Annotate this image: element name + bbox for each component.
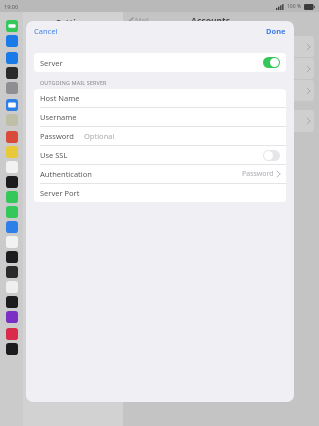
- button[interactable]: App 13: [6, 221, 18, 233]
- staticText: Cancel: [34, 26, 58, 36]
- button[interactable]: App 19: [6, 311, 18, 323]
- staticText: Server Port: [40, 188, 80, 198]
- staticText: Done: [266, 26, 286, 36]
- staticText: Mail: [135, 16, 149, 26]
- button[interactable]: App 14: [6, 236, 18, 248]
- staticText: Username: [40, 112, 77, 122]
- button[interactable]: App 1: [6, 35, 18, 47]
- button[interactable]: App 9: [6, 161, 18, 173]
- button[interactable]: App 6: [6, 114, 18, 126]
- button[interactable]: Toggle on: [263, 57, 280, 68]
- button[interactable]: App 8: [6, 146, 18, 158]
- button[interactable]: App 0: [6, 20, 18, 32]
- button[interactable]: App 16: [6, 266, 18, 278]
- button[interactable]: Password: [34, 127, 286, 145]
- staticText: Password: [40, 131, 74, 141]
- button[interactable]: App 2: [6, 52, 18, 64]
- button[interactable]: App 15: [6, 251, 18, 263]
- staticText: 100 %: [287, 3, 302, 10]
- button[interactable]: App 11: [6, 191, 18, 203]
- button[interactable]: Use SSL: [34, 146, 286, 164]
- button[interactable]: App 4: [6, 82, 18, 94]
- button[interactable]: App 18: [6, 296, 18, 308]
- staticText: Settings: [56, 17, 91, 29]
- button[interactable]: Done: [258, 21, 294, 40]
- button[interactable]: App 12: [6, 206, 18, 218]
- button[interactable]: Authentication: [34, 165, 286, 183]
- button[interactable]: Username: [34, 108, 286, 126]
- button[interactable]: App 3: [6, 67, 18, 79]
- staticText: Accounts: [191, 15, 230, 27]
- button[interactable]: Host Name: [34, 89, 286, 107]
- staticText: Authentication: [40, 169, 92, 179]
- staticText: Use SSL: [40, 150, 68, 160]
- staticText: 19:00: [4, 3, 19, 10]
- button[interactable]: Server Port: [34, 184, 286, 202]
- staticText: Optional: [84, 131, 115, 141]
- staticText: Server: [40, 58, 63, 68]
- button[interactable]: Music: [6, 328, 18, 340]
- button[interactable]: App 10: [6, 176, 18, 188]
- staticText: Password: [242, 169, 274, 179]
- button[interactable]: App 7: [6, 131, 18, 143]
- staticText: OUTGOING MAIL SERVER: [40, 79, 107, 86]
- button[interactable]: App 17: [6, 281, 18, 293]
- button[interactable]: Cancel: [26, 21, 66, 40]
- staticText: Host Name: [40, 93, 80, 103]
- button[interactable]: App 5: [6, 99, 18, 111]
- button[interactable]: Toggle off: [263, 150, 280, 161]
